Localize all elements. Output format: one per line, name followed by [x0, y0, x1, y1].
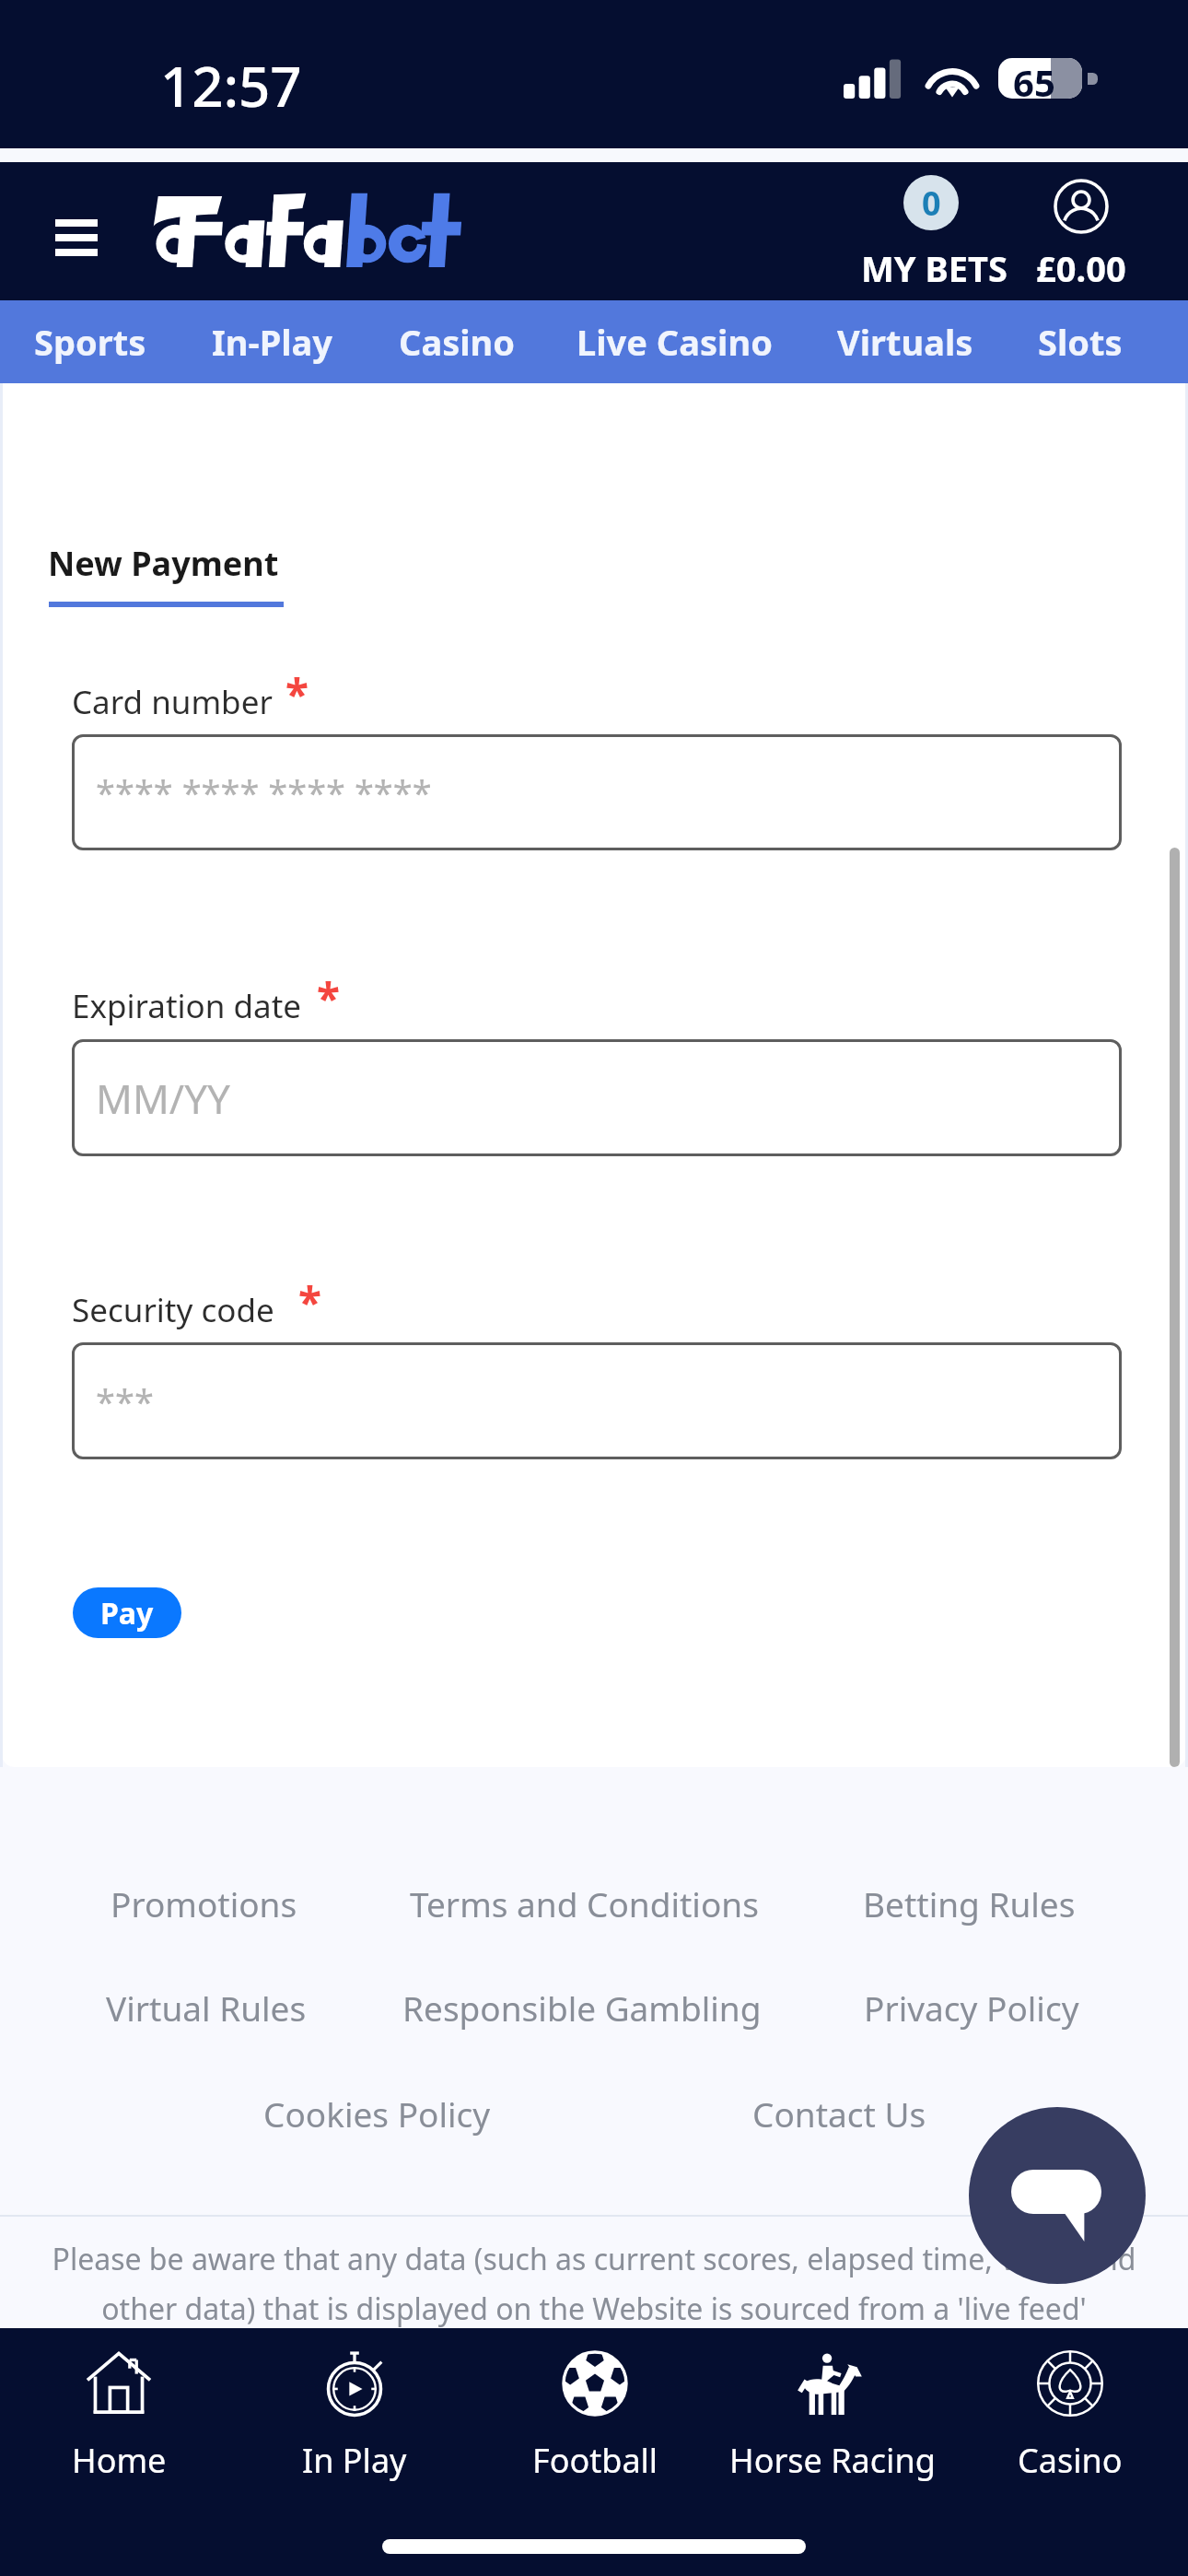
staticText: In Play [302, 2438, 407, 2483]
staticText: Card number [72, 680, 273, 724]
staticText: Cookies Policy [263, 2090, 491, 2137]
staticText: Sports [34, 318, 146, 366]
staticText: Contact Us [752, 2090, 926, 2137]
staticText: 0 [922, 181, 941, 226]
button[interactable]: Menu [29, 195, 123, 267]
button[interactable]: *** [72, 1342, 1122, 1459]
staticText: *** [96, 1377, 154, 1425]
staticText: 65 [1013, 57, 1055, 98]
button[interactable]: Promotions [111, 1880, 297, 1926]
staticText: **** **** **** **** [96, 768, 432, 816]
button[interactable]: Contact Us [752, 2090, 926, 2137]
button[interactable]: Account [1028, 170, 1138, 295]
button[interactable]: Horse Racing [715, 2332, 950, 2507]
staticText: MY BETS [861, 244, 1007, 292]
staticText: Privacy Policy [864, 1985, 1079, 2031]
button[interactable]: MM/YY [72, 1039, 1122, 1156]
staticText: £0.00 [1036, 244, 1126, 292]
staticText: Home [72, 2438, 167, 2483]
staticText: Promotions [111, 1880, 297, 1926]
staticText: Betting Rules [863, 1880, 1076, 1926]
button[interactable]: Cookies Policy [263, 2090, 491, 2137]
button[interactable]: Privacy Policy [864, 1985, 1079, 2031]
button[interactable]: Open live chat [969, 2107, 1146, 2284]
button[interactable]: Virtual Rules [106, 1985, 307, 2031]
button[interactable]: **** **** **** **** [72, 734, 1122, 850]
button[interactable]: Home [1, 2332, 237, 2507]
staticText: * [317, 969, 340, 1027]
button[interactable]: Virtuals [837, 318, 973, 366]
staticText: Pay [100, 1593, 154, 1633]
staticText: New Payment [48, 541, 279, 586]
staticText: Please be aware that any data (such as c… [0, 2239, 1188, 2328]
staticText: 12:57 [160, 48, 302, 123]
staticText: Slots [1038, 318, 1123, 366]
button[interactable]: Pay [73, 1587, 181, 1638]
staticText: Virtuals [837, 318, 973, 366]
staticText: Live Casino [577, 318, 773, 366]
staticText: Horse Racing [729, 2438, 936, 2483]
staticText: Expiration date [72, 984, 302, 1028]
staticText: Casino [1018, 2438, 1123, 2483]
button[interactable]: Betting Rules [863, 1880, 1076, 1926]
button[interactable]: Terms and Conditions [410, 1880, 759, 1926]
button[interactable]: Casino [399, 318, 516, 366]
staticText: MM/YY [96, 1071, 230, 1126]
staticText: * [285, 665, 309, 723]
button[interactable]: Casino [952, 2332, 1188, 2507]
other: Account [1054, 179, 1109, 234]
staticText: Casino [399, 318, 516, 366]
staticText: Football [532, 2438, 658, 2483]
button[interactable]: In Play [237, 2332, 472, 2507]
button[interactable]: Sports [34, 318, 146, 366]
staticText: Terms and Conditions [410, 1880, 759, 1926]
button[interactable]: 0 [856, 170, 1009, 295]
staticText: * [298, 1273, 321, 1331]
button[interactable]: In-Play [212, 318, 333, 366]
staticText: Responsible Gambling [402, 1985, 762, 2031]
staticText: In-Play [212, 318, 333, 366]
staticText: Virtual Rules [106, 1985, 307, 2031]
staticText: Security code [72, 1288, 274, 1332]
button[interactable]: Live Casino [577, 318, 773, 366]
button[interactable]: Slots [1038, 318, 1123, 366]
button[interactable]: Football [477, 2332, 713, 2507]
button[interactable] [145, 192, 452, 267]
button[interactable]: Responsible Gambling [402, 1985, 762, 2031]
